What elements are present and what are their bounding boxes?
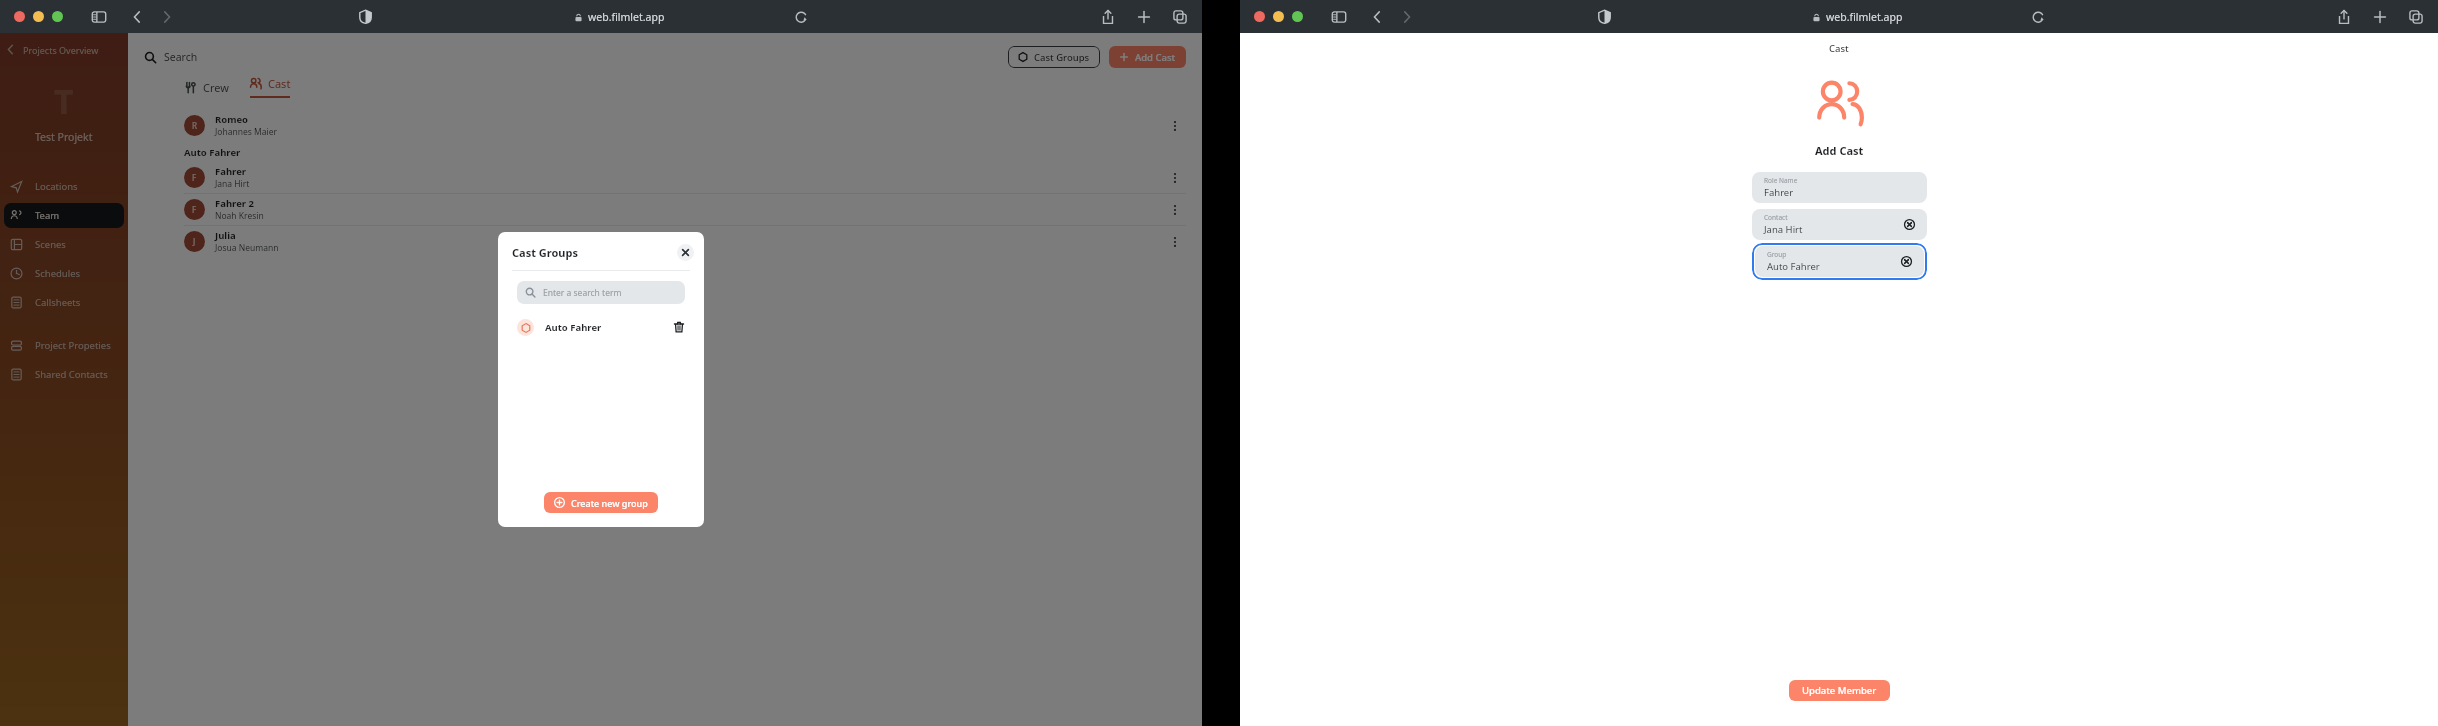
button[interactable]: Locations [4, 174, 124, 199]
button[interactable]: Create new group [544, 492, 658, 513]
staticText: Add Cast [1815, 143, 1864, 158]
button[interactable] [14, 11, 25, 22]
button[interactable]: Team [4, 203, 124, 228]
staticText: Cast Groups [512, 245, 578, 260]
staticText: Add Cast [1135, 51, 1176, 64]
button[interactable]: Clear Contact [1904, 219, 1915, 230]
button[interactable]: Reload [2030, 9, 2045, 24]
staticText: Fahrer 2 [215, 197, 254, 210]
staticText: Fahrer [215, 165, 247, 178]
button[interactable]: Scenes [4, 232, 124, 257]
button[interactable]: Forward [1399, 9, 1415, 25]
button[interactable]: Privacy report [358, 9, 373, 24]
staticText: Group [1767, 250, 1787, 259]
button[interactable]: New tab [2372, 9, 2388, 25]
button[interactable]: F [128, 194, 1202, 225]
staticText: Team [35, 209, 60, 222]
staticText: Role Name [1764, 176, 1798, 185]
staticText: R [192, 120, 198, 131]
button[interactable]: Close [677, 244, 694, 261]
button[interactable]: Auto Fahrer [498, 314, 704, 340]
staticText: Cast Groups [1034, 51, 1090, 64]
button[interactable]: Project Propeties [4, 333, 124, 358]
button[interactable] [33, 11, 44, 22]
button[interactable]: New tab [1136, 9, 1152, 25]
button[interactable] [1254, 11, 1265, 22]
staticText: Jana Hirt [215, 178, 250, 190]
staticText: Locations [35, 180, 78, 193]
button[interactable]: Toggle sidebar [1331, 9, 1347, 25]
button[interactable]: More options [1164, 199, 1186, 221]
button[interactable]: Search [144, 50, 198, 64]
button[interactable]: Shared Contacts [4, 362, 124, 387]
button[interactable]: Cast Groups [1008, 46, 1100, 68]
button[interactable]: Privacy report [1597, 9, 1612, 24]
staticText: Fahrer [1764, 186, 1794, 199]
staticText: Auto Fahrer [1767, 260, 1820, 273]
button[interactable]: Back [129, 9, 145, 25]
button[interactable]: Forward [159, 9, 175, 25]
button[interactable]: More options [1164, 115, 1186, 137]
button[interactable]: Reload [793, 9, 808, 24]
button[interactable]: Delete group [673, 321, 685, 333]
staticText: Test Projekt [35, 130, 93, 144]
button[interactable]: Toggle sidebar [91, 9, 107, 25]
staticText: Callsheets [35, 296, 81, 309]
button[interactable]: Enter a search term [517, 281, 685, 304]
button[interactable] [1292, 11, 1303, 22]
button[interactable]: Share [1100, 9, 1116, 25]
staticText: Create new group [571, 497, 648, 509]
staticText: Enter a search term [543, 287, 622, 299]
button[interactable]: F [128, 162, 1202, 193]
button[interactable]: Group [1755, 246, 1924, 277]
button[interactable] [52, 11, 63, 22]
staticText: Schedules [35, 267, 81, 280]
staticText: web.filmlet.app [1826, 10, 1903, 24]
button[interactable]: Show tabs [1172, 9, 1188, 25]
button[interactable]: Schedules [4, 261, 124, 286]
staticText: Noah Kresin [215, 210, 264, 222]
staticText: Cast [268, 76, 291, 91]
button[interactable]: R [128, 110, 1202, 141]
staticText: Auto Fahrer [184, 146, 241, 159]
staticText: Contact [1764, 213, 1788, 222]
button[interactable] [1273, 11, 1284, 22]
button[interactable]: Share [2336, 9, 2352, 25]
staticText: T [54, 78, 74, 124]
button[interactable]: J [128, 226, 1202, 257]
button[interactable]: Update Member [1789, 680, 1890, 701]
button[interactable]: Back [4, 43, 17, 56]
staticText: Julia [215, 229, 236, 242]
button[interactable]: Contact [1752, 209, 1927, 240]
button[interactable]: Back [1369, 9, 1385, 25]
button[interactable]: Show tabs [2408, 9, 2424, 25]
staticText: Crew [203, 80, 229, 95]
button[interactable]: Add Cast [1109, 46, 1186, 68]
button[interactable]: Clear Group [1901, 256, 1912, 267]
staticText: J [193, 236, 196, 247]
staticText: Search [164, 50, 198, 64]
button[interactable]: Cast [249, 76, 291, 98]
staticText: Scenes [35, 238, 66, 251]
staticText: Project Propeties [35, 339, 111, 352]
staticText: F [192, 204, 197, 215]
button[interactable]: Role Name [1752, 172, 1927, 203]
staticText: Jana Hirt [1764, 223, 1803, 236]
staticText: web.filmlet.app [588, 10, 665, 24]
button[interactable]: More options [1164, 231, 1186, 253]
staticText: Projects Overview [23, 44, 99, 56]
staticText: Update Member [1802, 684, 1877, 697]
staticText: Johannes Maier [215, 126, 278, 138]
staticText: F [192, 172, 197, 183]
button[interactable]: More options [1164, 167, 1186, 189]
staticText: Auto Fahrer [545, 321, 602, 334]
button[interactable]: Crew [184, 80, 229, 95]
staticText: Cast [1829, 42, 1849, 55]
staticText: Shared Contacts [35, 368, 108, 381]
staticText: Josua Neumann [215, 242, 279, 254]
button[interactable]: Callsheets [4, 290, 124, 315]
staticText: Romeo [215, 113, 249, 126]
